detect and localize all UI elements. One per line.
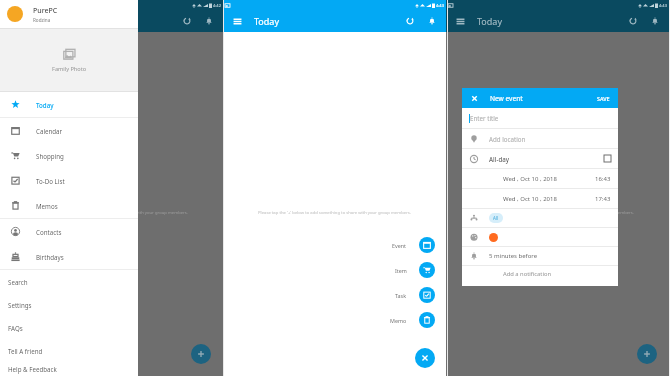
staticText: Item xyxy=(395,267,407,274)
button[interactable]: Help & Feedback xyxy=(0,362,138,376)
button[interactable]: Birthdays xyxy=(0,244,138,269)
button[interactable]: Enter title xyxy=(462,108,618,128)
button[interactable]: Task xyxy=(395,287,435,303)
button[interactable]: Calendar xyxy=(0,118,138,143)
button[interactable]: Close menu xyxy=(415,348,435,368)
staticText: Contacts xyxy=(36,228,62,236)
button[interactable]: Event xyxy=(392,237,435,253)
staticText: Please tap the '+' below to add somethin… xyxy=(35,210,188,216)
button[interactable]: Memos xyxy=(0,193,138,218)
staticText: Task xyxy=(395,292,407,299)
staticText: Today xyxy=(36,101,54,109)
button[interactable]: Open navigation drawer xyxy=(453,14,467,28)
other: Add task xyxy=(419,287,435,303)
staticText: Birthdays xyxy=(36,253,64,261)
staticText: Wed , Oct 10 , 2018 xyxy=(503,175,557,183)
staticText: Wed , Oct 10 , 2018 xyxy=(503,195,557,203)
button[interactable]: FAQs xyxy=(0,316,138,339)
staticText: Search xyxy=(8,278,28,286)
staticText: To-Do List xyxy=(36,177,65,185)
staticText: Add location xyxy=(489,135,526,143)
button[interactable]: Today xyxy=(0,92,138,117)
other: Add item xyxy=(419,262,435,278)
button[interactable]: Add a notification xyxy=(462,266,618,282)
staticText: Shopping xyxy=(36,152,64,160)
staticText: All-day xyxy=(489,155,510,163)
staticText: 16:43 xyxy=(595,175,611,183)
staticText: All xyxy=(493,215,499,221)
staticText: New event xyxy=(490,94,523,103)
button[interactable]: Notifications xyxy=(648,14,662,28)
other: Add event xyxy=(419,237,435,253)
staticText: Tell A friend xyxy=(8,347,43,355)
button[interactable]: SAVE xyxy=(593,92,614,105)
staticText: Settings xyxy=(8,301,32,309)
button[interactable]: Notifications xyxy=(425,14,439,28)
button[interactable]: Tell A friend xyxy=(0,339,138,362)
button[interactable]: Refresh xyxy=(180,14,194,28)
staticText: Please tap the '+' below to add somethin… xyxy=(481,210,634,216)
button[interactable]: Notifications xyxy=(202,14,216,28)
button[interactable]: Refresh xyxy=(626,14,640,28)
staticText: 17:43 xyxy=(595,195,611,203)
button[interactable]: Add xyxy=(191,344,211,364)
button[interactable]: All-day xyxy=(462,149,618,168)
staticText: Today xyxy=(477,15,502,27)
staticText: Add a notification xyxy=(503,270,551,278)
button[interactable]: Wed , Oct 10 , 2018 xyxy=(462,169,618,188)
button[interactable]: Memo xyxy=(390,312,435,328)
staticText: Please tap the '+' below to add somethin… xyxy=(258,210,411,216)
staticText: Today xyxy=(254,15,279,27)
staticText: 4:43 xyxy=(659,3,667,8)
button[interactable]: To-Do List xyxy=(0,168,138,193)
staticText: 5 minutes before xyxy=(489,252,538,260)
button[interactable]: Item xyxy=(395,262,435,278)
button[interactable]: Search xyxy=(0,270,138,293)
button[interactable]: Refresh xyxy=(403,14,417,28)
button[interactable]: Family Photo xyxy=(0,29,138,91)
staticText: Memo xyxy=(390,317,407,324)
staticText: Rodzina xyxy=(33,17,51,23)
button[interactable]: Close xyxy=(468,92,481,105)
staticText: Help & Feedback xyxy=(8,365,57,373)
staticText: FAQs xyxy=(8,324,23,332)
staticText: Enter title xyxy=(470,114,499,122)
staticText: Family Photo xyxy=(52,65,87,73)
button[interactable]: 5 minutes before xyxy=(462,247,618,265)
staticText: 4:42 xyxy=(213,3,221,8)
button[interactable]: Shopping xyxy=(0,143,138,168)
button[interactable]: Open navigation drawer xyxy=(7,14,21,28)
staticText: Event xyxy=(392,242,407,249)
staticText: Memos xyxy=(36,202,58,210)
button[interactable]: Wed , Oct 10 , 2018 xyxy=(462,189,618,208)
staticText: PurePC xyxy=(33,6,58,16)
staticText: 4:43 xyxy=(436,3,444,8)
button[interactable]: Add xyxy=(637,344,657,364)
staticText: SAVE xyxy=(597,95,610,102)
staticText: Calendar xyxy=(36,127,63,135)
other: Add memo xyxy=(419,312,435,328)
button[interactable]: Contacts xyxy=(0,219,138,244)
button[interactable]: Settings xyxy=(0,293,138,316)
button[interactable]: All xyxy=(462,209,618,227)
button[interactable]: Open navigation drawer xyxy=(230,14,244,28)
button[interactable]: Add location xyxy=(462,129,618,148)
button[interactable] xyxy=(462,228,618,246)
